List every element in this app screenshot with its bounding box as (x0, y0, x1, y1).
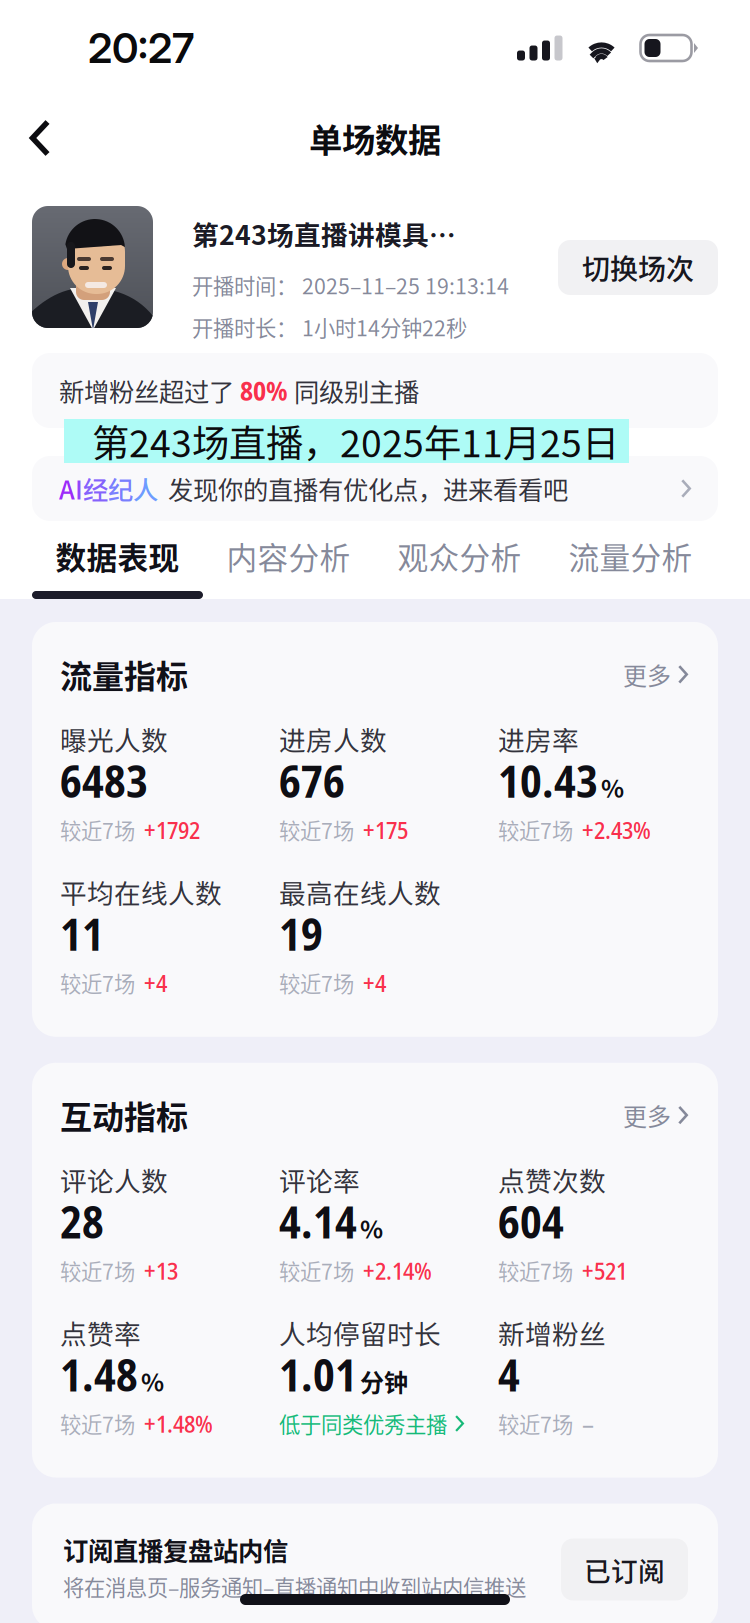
staticText: % (360, 1211, 383, 1245)
staticText: 已订阅 (584, 1550, 665, 1589)
staticText: 发现你的直播有优化点，进来看看吧 (168, 470, 568, 507)
staticText: 1.48 (60, 1344, 138, 1404)
staticText: +1.48% (144, 1407, 213, 1440)
staticText: 1小时14分钟22秒 (302, 311, 467, 342)
staticText: 平均在线人数 (60, 872, 222, 911)
button[interactable]: 观众分析 (374, 521, 545, 591)
staticText: 19 (279, 904, 323, 964)
staticText: 点赞率 (60, 1313, 141, 1352)
button[interactable]: 返回 (0, 96, 80, 180)
staticText: 604 (498, 1191, 564, 1251)
button[interactable]: 更多 (599, 1092, 688, 1139)
staticText: 开播时长： (192, 311, 297, 342)
button[interactable]: 数据表现 (32, 521, 203, 591)
staticText: 4.14 (279, 1191, 357, 1251)
staticText: 经 (83, 470, 108, 507)
staticText: +4 (363, 966, 386, 999)
staticText: – (582, 1407, 594, 1440)
staticText: 较近7场 (279, 814, 354, 845)
staticText: +2.43% (582, 813, 651, 846)
staticText: 最高在线人数 (279, 872, 441, 911)
button[interactable]: 已订阅 (561, 1538, 688, 1600)
staticText: 进房人数 (279, 719, 387, 758)
staticText: 新增粉丝 (498, 1313, 606, 1352)
button[interactable]: 内容分析 (203, 521, 374, 591)
staticText: % (141, 1364, 164, 1398)
staticText: 进房率 (498, 719, 579, 758)
staticText: 第243场直播，2025年11月25日 (92, 414, 619, 468)
staticText: 数据表现 (55, 534, 179, 578)
staticText: 10.43 (498, 751, 598, 811)
staticText: 点赞次数 (498, 1160, 606, 1199)
staticText: 曝光人数 (60, 719, 168, 758)
staticText: 较近7场 (279, 967, 354, 998)
staticText: 较近7场 (60, 1255, 135, 1286)
staticText: 4 (498, 1344, 520, 1404)
staticText: +1792 (144, 813, 200, 846)
staticText: 低于同类优秀主播 (279, 1408, 447, 1439)
button[interactable]: A (32, 456, 718, 521)
button[interactable]: 切换场次 (558, 240, 718, 295)
staticText: 流量指标 (60, 651, 188, 697)
staticText: 内容分析 (226, 534, 350, 578)
staticText: 1.01 (279, 1344, 357, 1404)
staticText: A (59, 470, 75, 507)
button[interactable]: 流量分析 (545, 521, 716, 591)
staticText: 2025–11–25 19:13:14 (302, 270, 509, 300)
staticText: 观众分析 (397, 534, 521, 578)
staticText: 开播时间： (192, 270, 297, 300)
staticText: 评论人数 (60, 1160, 168, 1199)
staticText: 第243场直播讲模具… (192, 214, 456, 253)
staticText: 纪 (108, 470, 133, 507)
staticText: 11 (60, 904, 104, 964)
button[interactable]: 更多 (599, 651, 688, 698)
staticText: 较近7场 (60, 814, 135, 845)
staticText: 较近7场 (498, 1255, 573, 1286)
staticText: 单场数据 (309, 114, 441, 162)
staticText: 流量分析 (568, 534, 692, 578)
staticText: 较近7场 (498, 814, 573, 845)
staticText: 将在消息页–服务通知–直播通知中收到站内信推送 (63, 1571, 526, 1602)
staticText: 分钟 (360, 1364, 408, 1398)
staticText: 切换场次 (582, 247, 694, 288)
staticText: % (601, 770, 624, 805)
staticText: +175 (363, 813, 408, 846)
staticText: 676 (279, 751, 345, 811)
staticText: 评论率 (279, 1160, 360, 1199)
staticText: 新增粉丝超过了 (59, 372, 234, 409)
staticText: 80% (240, 372, 288, 409)
staticText: +13 (144, 1254, 178, 1287)
staticText: 28 (60, 1191, 104, 1251)
staticText: 较近7场 (60, 1408, 135, 1439)
staticText: 互动指标 (60, 1092, 188, 1138)
staticText: +4 (144, 966, 167, 999)
staticText: 较近7场 (60, 967, 135, 998)
staticText: 6483 (60, 751, 148, 811)
staticText: 20:27 (88, 23, 194, 73)
staticText: 订阅直播复盘站内信 (63, 1531, 288, 1568)
staticText: 人 (133, 470, 158, 507)
staticText: 较近7场 (279, 1255, 354, 1286)
staticText: +521 (582, 1254, 627, 1287)
staticText: I (75, 470, 83, 507)
staticText: 更多 (623, 1098, 671, 1133)
staticText: +2.14% (363, 1254, 432, 1287)
staticText: 较近7场 (498, 1408, 573, 1439)
staticText: 更多 (623, 657, 671, 692)
staticText: 同级别主播 (294, 372, 419, 409)
staticText: 人均停留时长 (279, 1313, 441, 1352)
